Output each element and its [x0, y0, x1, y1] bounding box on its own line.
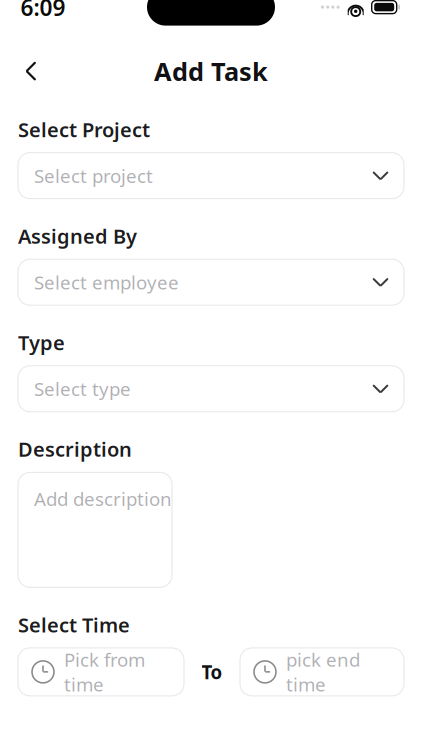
staticText: 6:09 — [20, 0, 65, 22]
staticText: Select type — [34, 376, 131, 401]
button[interactable]: Add description — [18, 472, 172, 587]
staticText: Select employee — [34, 270, 179, 295]
button[interactable]: Back — [12, 52, 50, 90]
staticText: To — [201, 659, 222, 684]
button[interactable]: Select project — [18, 153, 404, 199]
staticText: Type — [18, 329, 65, 356]
button[interactable]: pick end time — [240, 648, 404, 696]
staticText: Select Project — [18, 116, 150, 143]
staticText: Pick from time — [64, 647, 145, 697]
button[interactable]: Select employee — [18, 259, 404, 305]
staticText: Add description — [34, 486, 172, 511]
button[interactable]: Pick from time — [18, 648, 184, 696]
staticText: Select project — [34, 163, 153, 188]
button[interactable]: Select type — [18, 366, 404, 412]
staticText: Description — [18, 436, 132, 462]
staticText: pick end time — [286, 647, 360, 697]
staticText: Add Task — [154, 54, 268, 88]
staticText: Assigned By — [18, 223, 137, 249]
staticText: Select Time — [18, 611, 130, 638]
